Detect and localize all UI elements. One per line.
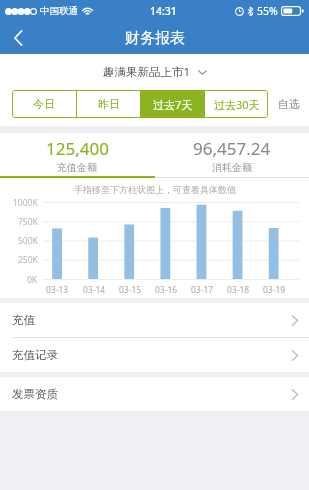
- staticText: 03-19: [263, 284, 286, 296]
- staticText: 125,400: [46, 137, 109, 160]
- staticText: 03-18: [227, 284, 250, 296]
- staticText: 0K: [27, 274, 38, 285]
- staticText: 中国联通: [40, 5, 78, 17]
- staticText: 250K: [18, 254, 38, 265]
- staticText: 1000K: [13, 197, 38, 208]
- button[interactable]: 过去30天: [205, 90, 268, 118]
- staticText: 500K: [18, 235, 38, 246]
- staticText: 03-14: [83, 284, 106, 296]
- staticText: 今日: [33, 97, 55, 111]
- button[interactable]: 充值: [0, 303, 309, 337]
- staticText: 发票资质: [12, 387, 58, 401]
- button[interactable]: 趣满果新品上市1: [0, 54, 309, 90]
- staticText: 财务报表: [125, 29, 185, 48]
- button[interactable]: 过去7天: [141, 90, 204, 118]
- staticText: 充值记录: [12, 348, 58, 362]
- staticText: 750K: [18, 216, 38, 227]
- staticText: 14:31: [150, 4, 177, 18]
- staticText: 过去7天: [153, 97, 193, 112]
- staticText: 过去30天: [214, 97, 260, 112]
- staticText: 03-13: [46, 284, 69, 296]
- staticText: 消耗金额: [212, 161, 252, 174]
- staticText: 03-15: [119, 284, 142, 296]
- staticText: 趣满果新品上市1: [103, 64, 191, 80]
- button[interactable]: 今日: [12, 90, 76, 118]
- button[interactable]: 自选: [268, 90, 309, 118]
- staticText: 自选: [278, 97, 300, 111]
- button[interactable]: 充值记录: [0, 338, 309, 372]
- staticText: 96,457.24: [193, 137, 271, 160]
- staticText: 03-16: [155, 284, 178, 296]
- staticText: 充值金额: [57, 161, 97, 174]
- button[interactable]: 发票资质: [0, 377, 309, 411]
- staticText: 55%: [257, 4, 278, 18]
- staticText: 充值: [12, 313, 35, 327]
- staticText: 手指移至下方柱状图上，可查看具体数值: [74, 184, 236, 195]
- staticText: 03-17: [191, 284, 214, 296]
- staticText: 昨日: [98, 97, 120, 111]
- button[interactable]: 昨日: [77, 90, 140, 118]
- button[interactable]: Back: [0, 22, 36, 54]
